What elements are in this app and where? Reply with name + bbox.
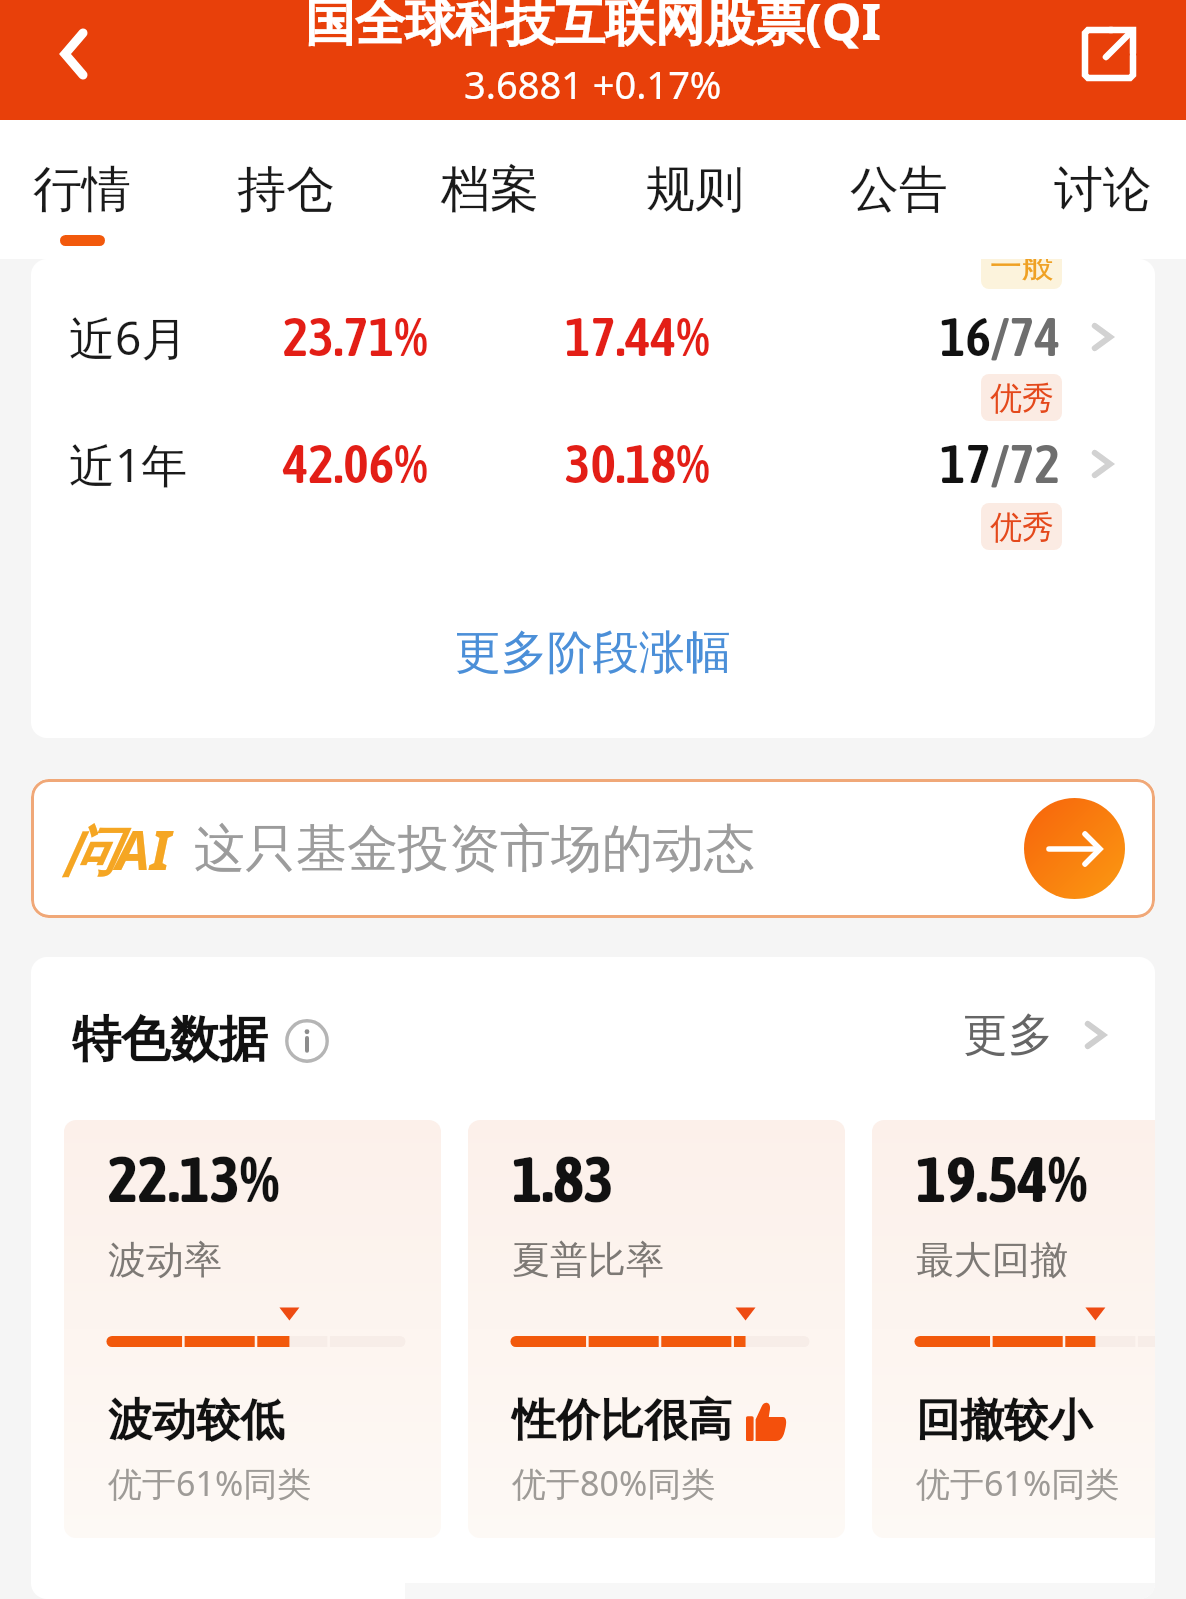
- staticText: 近6月: [69, 306, 188, 369]
- staticText: 回撤较小: [916, 1393, 1092, 1448]
- button[interactable]: 讨论: [1001, 120, 1186, 259]
- staticText: 更多: [963, 1007, 1053, 1064]
- button[interactable]: 1.83: [468, 1120, 845, 1538]
- staticText: 优于80%同类: [512, 1460, 716, 1506]
- staticText: 规则: [646, 159, 744, 221]
- button[interactable]: Back: [27, 6, 123, 102]
- staticText: 优秀: [990, 378, 1054, 418]
- staticText: 优于61%同类: [108, 1460, 312, 1506]
- staticText: 42.06%: [283, 433, 428, 495]
- staticText: 1.83: [512, 1142, 614, 1215]
- button[interactable]: Ask AI: [1024, 798, 1125, 899]
- button[interactable]: 更多: [963, 1005, 1115, 1065]
- other: Info: [285, 1019, 329, 1063]
- staticText: 波动较低: [108, 1393, 284, 1448]
- staticText: 更多阶段涨幅: [455, 624, 731, 682]
- staticText: 一般: [990, 259, 1054, 286]
- button[interactable]: 更多阶段涨幅: [31, 598, 1155, 708]
- staticText: 16: [940, 306, 991, 368]
- staticText: 19.54%: [916, 1142, 1088, 1215]
- staticText: 持仓: [237, 159, 335, 221]
- staticText: 23.71%: [283, 306, 428, 368]
- staticText: 3.6881 +0.17%: [464, 58, 722, 110]
- staticText: 行情: [33, 159, 131, 221]
- button[interactable]: 档案: [388, 120, 592, 259]
- staticText: 22.13%: [108, 1142, 280, 1215]
- staticText: /74: [991, 306, 1061, 368]
- staticText: 17: [940, 433, 991, 495]
- button[interactable]: 公告: [797, 120, 1001, 259]
- button[interactable]: 问AI: [31, 779, 1155, 918]
- staticText: 档案: [441, 159, 539, 221]
- button[interactable]: 行情: [0, 120, 184, 259]
- staticText: 30.18%: [565, 433, 710, 495]
- staticText: 夏普比率: [512, 1236, 664, 1284]
- button[interactable]: 22.13%: [64, 1120, 441, 1538]
- staticText: 公告: [850, 159, 948, 221]
- staticText: 问AI: [62, 812, 171, 886]
- staticText: 这只基金投资市场的动态: [194, 817, 755, 881]
- button[interactable]: Share: [1072, 17, 1148, 93]
- staticText: 国全球科技互联网股票(QI: [305, 0, 881, 55]
- staticText: 17.44%: [565, 306, 710, 368]
- button[interactable]: 19.54%: [872, 1120, 1155, 1538]
- button[interactable]: 规则: [593, 120, 797, 259]
- staticText: 最大回撤: [916, 1236, 1068, 1284]
- staticText: 特色数据: [72, 1009, 268, 1071]
- staticText: 讨论: [1054, 159, 1152, 221]
- staticText: 优于61%同类: [916, 1460, 1120, 1506]
- staticText: 波动率: [108, 1236, 222, 1284]
- staticText: 优秀: [990, 507, 1054, 547]
- staticText: 近1年: [69, 433, 188, 496]
- staticText: /72: [991, 433, 1061, 495]
- button[interactable]: 近6月: [31, 289, 1155, 385]
- button[interactable]: 近1年: [31, 416, 1155, 512]
- button[interactable]: 持仓: [184, 120, 388, 259]
- staticText: 性价比很高: [512, 1393, 732, 1448]
